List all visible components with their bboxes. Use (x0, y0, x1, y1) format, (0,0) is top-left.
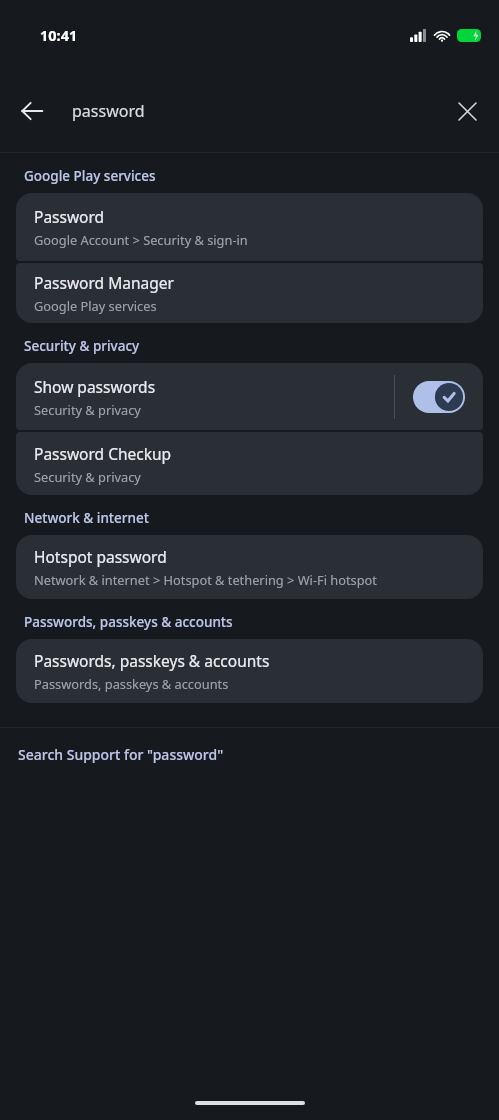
staticText: Passwords, passkeys & accounts (34, 675, 229, 692)
staticText: Network & internet (24, 509, 149, 527)
button[interactable]: Passwords, passkeys & accounts (16, 639, 483, 703)
staticText: Hotspot password (34, 546, 167, 567)
staticText: Network & internet > Hotspot & tethering… (34, 571, 377, 588)
button[interactable]: Password (16, 193, 483, 261)
button[interactable]: Password Manager (16, 263, 483, 323)
staticText: 10:41 (40, 25, 78, 45)
staticText: password (72, 100, 145, 122)
staticText: Security & privacy (24, 337, 140, 355)
staticText: Password Checkup (34, 443, 172, 464)
staticText: Passwords, passkeys & accounts (34, 650, 270, 671)
staticText: Password (34, 206, 105, 227)
button[interactable]: Show passwords toggle (395, 363, 483, 430)
button[interactable]: Clear search (445, 89, 489, 133)
button[interactable]: Search Support for "password" (0, 728, 499, 780)
button[interactable]: Password Checkup (16, 432, 483, 495)
staticText: Google Play services (24, 167, 156, 185)
staticText: Security & privacy (34, 468, 141, 485)
staticText: Password Manager (34, 272, 174, 293)
staticText: Search Support for "password" (18, 745, 224, 764)
staticText: Google Play services (34, 297, 157, 314)
button[interactable]: Back (8, 87, 56, 135)
staticText: Security & privacy (34, 401, 141, 418)
button[interactable]: Hotspot password (16, 535, 483, 599)
staticText: Passwords, passkeys & accounts (24, 613, 233, 631)
staticText: Google Account > Security & sign-in (34, 231, 248, 248)
staticText: Show passwords (34, 376, 156, 397)
button[interactable]: Show passwords (16, 363, 483, 430)
